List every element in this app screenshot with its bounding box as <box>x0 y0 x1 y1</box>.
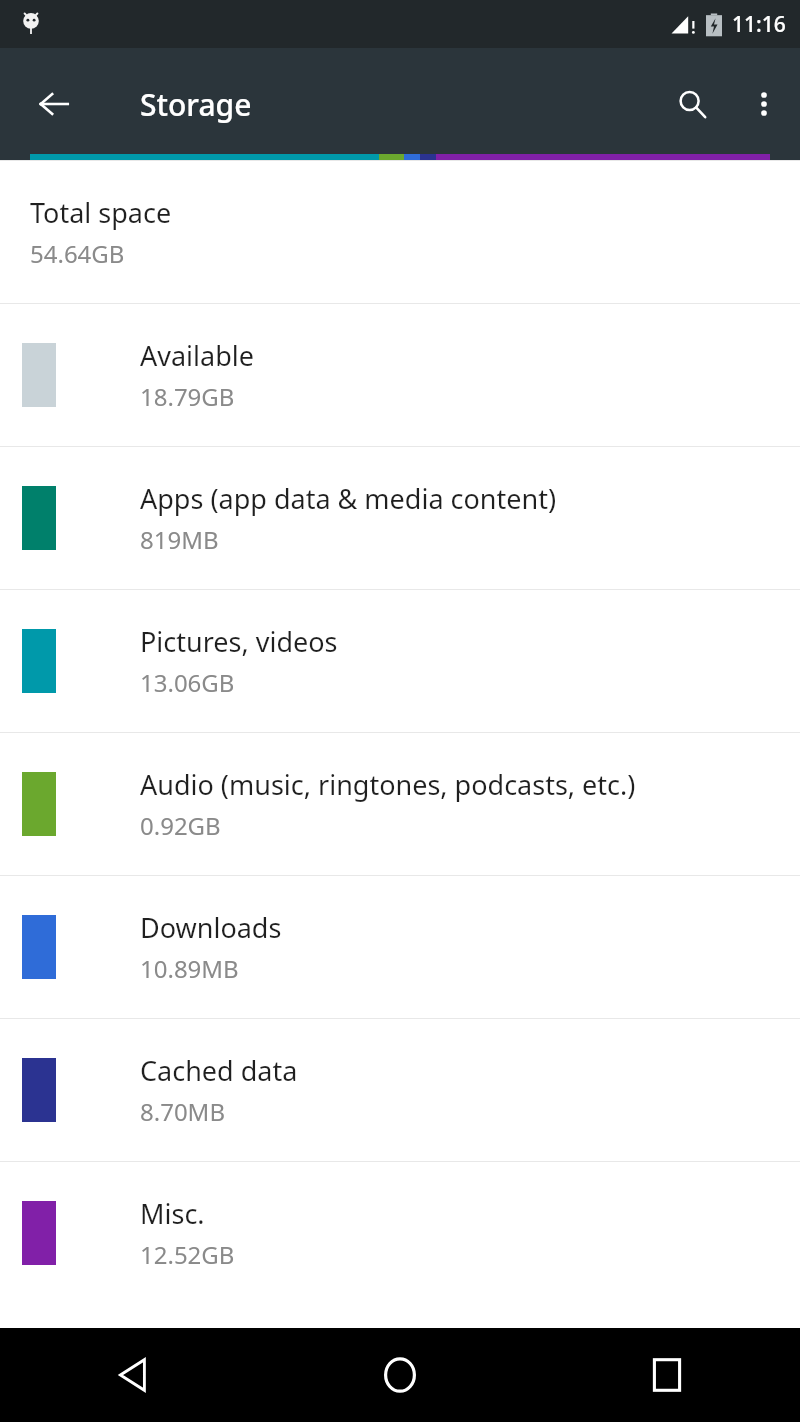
staticText: Cached data <box>140 1052 298 1089</box>
staticText: 18.79GB <box>140 380 235 413</box>
staticText: Pictures, videos <box>140 623 338 660</box>
staticText: 54.64GB <box>30 237 125 270</box>
button[interactable]: More options <box>728 68 800 140</box>
staticText: Audio (music, ringtones, podcasts, etc.) <box>140 766 636 803</box>
staticText: Storage <box>140 84 252 125</box>
button[interactable]: Available <box>0 304 800 446</box>
staticText: Available <box>140 337 254 374</box>
button[interactable]: Downloads <box>0 876 800 1018</box>
button[interactable]: Total space <box>0 161 800 303</box>
staticText: Misc. <box>140 1195 205 1232</box>
button[interactable]: Home <box>266 1328 533 1422</box>
button[interactable]: Navigate up <box>22 72 86 136</box>
button[interactable]: Search <box>656 68 728 140</box>
button[interactable]: Apps (app data & media content) <box>0 447 800 589</box>
staticText: Downloads <box>140 909 282 946</box>
button[interactable]: Back <box>0 1328 266 1422</box>
staticText: 13.06GB <box>140 666 235 699</box>
staticText: 10.89MB <box>140 952 239 985</box>
button[interactable]: Misc. <box>0 1162 800 1304</box>
staticText: 11:16 <box>732 10 786 39</box>
staticText: 8.70MB <box>140 1095 225 1128</box>
button[interactable]: Pictures, videos <box>0 590 800 732</box>
staticText: 0.92GB <box>140 809 221 842</box>
button[interactable]: Cached data <box>0 1019 800 1161</box>
staticText: 12.52GB <box>140 1238 235 1271</box>
staticText: Apps (app data & media content) <box>140 480 557 517</box>
button[interactable]: Recent apps <box>533 1328 800 1422</box>
staticText: 819MB <box>140 523 219 556</box>
button[interactable]: Audio (music, ringtones, podcasts, etc.) <box>0 733 800 875</box>
staticText: Total space <box>30 194 172 231</box>
